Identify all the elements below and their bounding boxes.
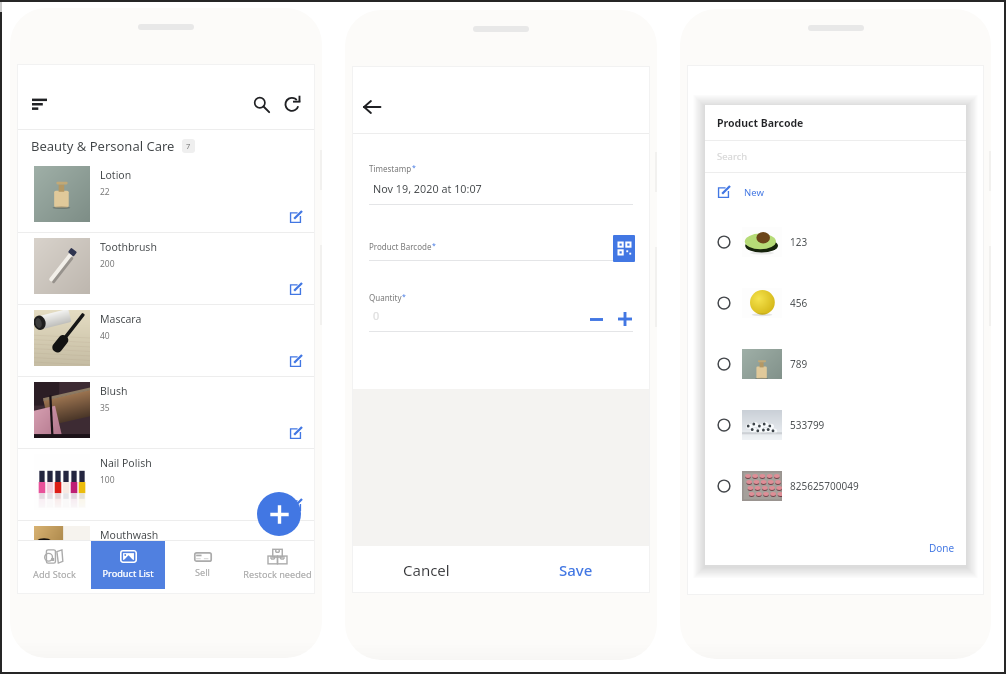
- button[interactable]: Cancel: [352, 546, 501, 593]
- staticText: Product Barcode: [369, 241, 432, 252]
- button[interactable]: Blush: [17, 377, 315, 448]
- staticText: Product Barcode: [717, 116, 804, 130]
- staticText: Nov 19, 2020 at 10:07: [373, 181, 482, 196]
- button[interactable]: Done: [921, 537, 966, 559]
- staticText: Done: [929, 541, 955, 555]
- staticText: 7: [186, 141, 191, 151]
- staticText: 533799: [790, 418, 825, 432]
- staticText: *: [412, 163, 416, 173]
- button[interactable]: 789: [716, 333, 966, 394]
- staticText: Quantity: [369, 292, 402, 303]
- staticText: Restock needed: [243, 568, 312, 581]
- button[interactable]: Mascara: [17, 305, 315, 376]
- staticText: Save: [559, 560, 593, 580]
- button[interactable]: Search: [717, 141, 966, 172]
- button[interactable]: Increase quantity: [615, 309, 635, 329]
- staticText: Timestamp: [369, 163, 412, 174]
- staticText: 789: [790, 357, 808, 371]
- button[interactable]: Sell: [165, 541, 240, 589]
- staticText: Lotion: [100, 168, 132, 182]
- staticText: 456: [790, 296, 808, 310]
- button[interactable]: Add Stock: [17, 541, 91, 589]
- staticText: *: [432, 241, 436, 251]
- button[interactable]: 123: [716, 211, 966, 272]
- button[interactable]: Edit: [287, 569, 303, 585]
- button[interactable]: Scan barcode: [613, 235, 635, 262]
- button[interactable]: Restock needed: [240, 541, 315, 589]
- button[interactable]: Edit: [287, 497, 303, 513]
- button[interactable]: Back: [352, 87, 392, 127]
- staticText: 40: [100, 330, 110, 342]
- button[interactable]: Lotion: [17, 161, 315, 232]
- button[interactable]: Edit: [287, 353, 303, 369]
- button[interactable]: Edit: [287, 281, 303, 297]
- button[interactable]: Save: [501, 546, 650, 593]
- button[interactable]: Mouthwash: [17, 521, 315, 592]
- button[interactable]: Decrease quantity: [586, 309, 606, 329]
- staticText: Sell: [195, 566, 210, 579]
- button[interactable]: 456: [716, 272, 966, 333]
- staticText: Cancel: [403, 560, 450, 580]
- staticText: 123: [790, 235, 808, 249]
- button[interactable]: Edit: [287, 425, 303, 441]
- staticText: 200: [100, 258, 115, 270]
- button[interactable]: Edit: [287, 209, 303, 225]
- button[interactable]: 825625700049: [716, 455, 966, 516]
- button[interactable]: Search: [241, 84, 281, 124]
- button[interactable]: Sort: [19, 84, 59, 124]
- button[interactable]: 533799: [716, 394, 966, 455]
- button[interactable]: Toothbrush: [17, 233, 315, 304]
- button[interactable]: Add product: [257, 492, 301, 536]
- button[interactable]: Nail Polish: [17, 449, 315, 520]
- staticText: Blush: [100, 384, 128, 398]
- staticText: 825625700049: [790, 479, 859, 493]
- staticText: Product List: [102, 567, 154, 580]
- staticText: Beauty & Personal Care: [31, 137, 175, 155]
- button[interactable]: New: [716, 173, 966, 211]
- button[interactable]: Product List: [91, 541, 165, 589]
- staticText: Add Stock: [33, 568, 76, 581]
- staticText: 0: [373, 308, 380, 323]
- staticText: 22: [100, 186, 110, 198]
- staticText: 35: [100, 402, 110, 414]
- staticText: Toothbrush: [100, 240, 157, 254]
- staticText: *: [402, 292, 406, 302]
- staticText: 100: [100, 474, 115, 486]
- staticText: Search: [717, 150, 748, 163]
- staticText: Mascara: [100, 312, 142, 326]
- button[interactable]: Refresh: [273, 84, 313, 124]
- staticText: Nail Polish: [100, 456, 152, 470]
- staticText: New: [744, 186, 764, 199]
- staticText: Mouthwash: [100, 528, 159, 542]
